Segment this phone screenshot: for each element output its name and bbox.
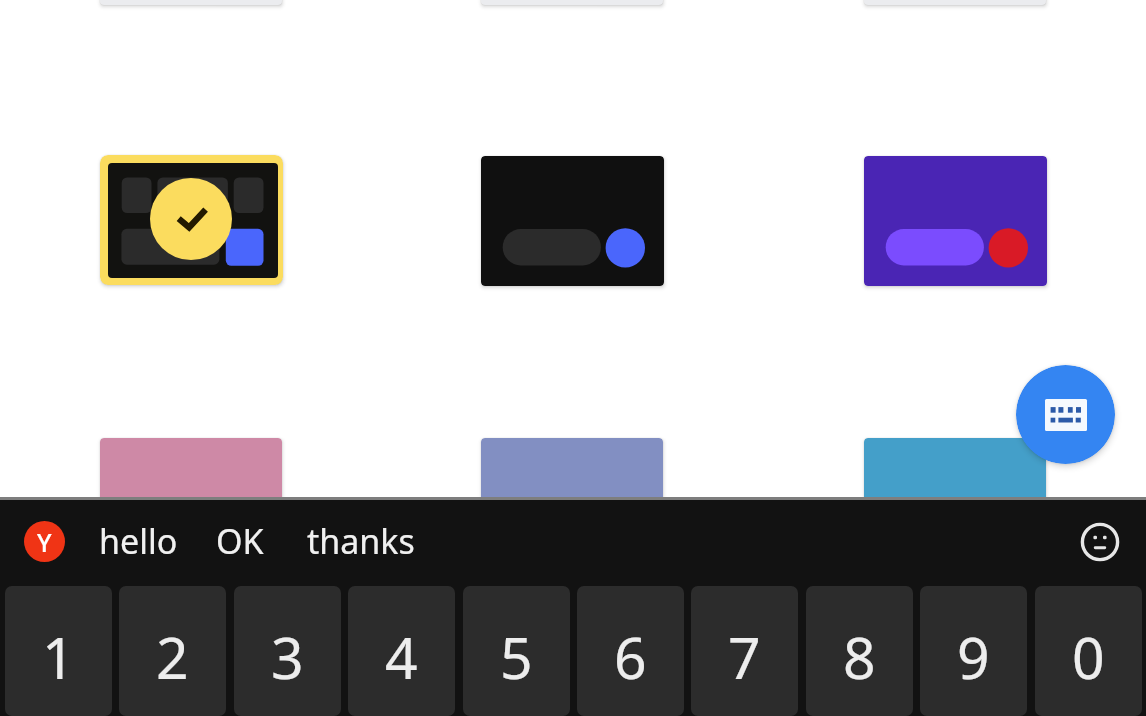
- button[interactable]: Rose theme: [100, 438, 282, 568]
- staticText: 5: [500, 618, 533, 696]
- staticText: 1: [42, 618, 75, 696]
- button[interactable]: 1: [5, 586, 112, 716]
- staticText: 2: [156, 618, 189, 696]
- button[interactable]: hello: [83, 509, 162, 573]
- staticText: 7: [728, 618, 761, 696]
- staticText: OK: [216, 518, 264, 564]
- button[interactable]: 8: [806, 586, 913, 716]
- button[interactable]: 5: [463, 586, 570, 716]
- staticText: 8: [843, 618, 876, 696]
- button[interactable]: 6: [577, 586, 684, 716]
- staticText: 9: [957, 618, 990, 696]
- button[interactable]: Indigo theme: [481, 438, 663, 568]
- button[interactable]: Keyboard assistant: [24, 521, 65, 562]
- button[interactable]: 4: [348, 586, 455, 716]
- staticText: 6: [614, 618, 647, 696]
- staticText: 3: [271, 618, 304, 696]
- staticText: thanks: [307, 518, 415, 564]
- button[interactable]: 3: [234, 586, 341, 716]
- button[interactable]: Teal theme: [864, 438, 1046, 568]
- button[interactable]: 9: [920, 586, 1027, 716]
- button[interactable]: 2: [119, 586, 226, 716]
- button[interactable]: Open keyboard: [1016, 365, 1115, 464]
- button[interactable]: 0: [1035, 586, 1142, 716]
- button[interactable]: Dark theme: [481, 156, 664, 286]
- staticText: Y: [37, 525, 52, 559]
- button[interactable]: 7: [691, 586, 798, 716]
- button[interactable]: Emoji: [1076, 518, 1124, 566]
- button[interactable]: OK: [200, 509, 248, 573]
- staticText: 4: [385, 618, 418, 696]
- staticText: 0: [1072, 618, 1105, 696]
- button[interactable]: Selected theme: [100, 155, 283, 285]
- button[interactable]: thanks: [291, 509, 399, 573]
- staticText: hello: [99, 518, 178, 564]
- button[interactable]: Purple theme: [864, 156, 1047, 286]
